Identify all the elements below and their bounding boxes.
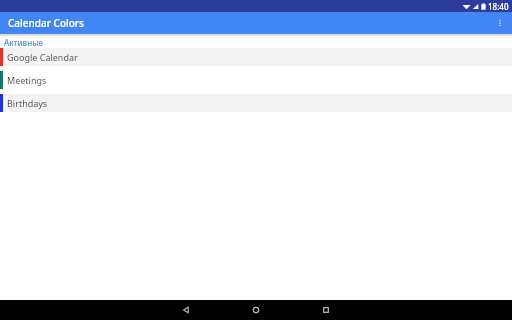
staticText: Google Calendar [7,51,78,63]
button[interactable]: Birthdays [0,94,512,112]
button[interactable]: Google Calendar [0,48,512,66]
staticText: 18:40 [488,1,509,12]
button[interactable]: More options [488,12,512,34]
button[interactable]: Home [239,300,273,320]
staticText: Активные [4,37,43,48]
button[interactable]: Back [169,300,203,320]
staticText: Calendar Colors [8,16,84,30]
staticText: Meetings [7,74,47,86]
staticText: Birthdays [7,97,48,109]
button[interactable]: Recent apps [309,300,343,320]
button[interactable]: Meetings [0,71,512,89]
